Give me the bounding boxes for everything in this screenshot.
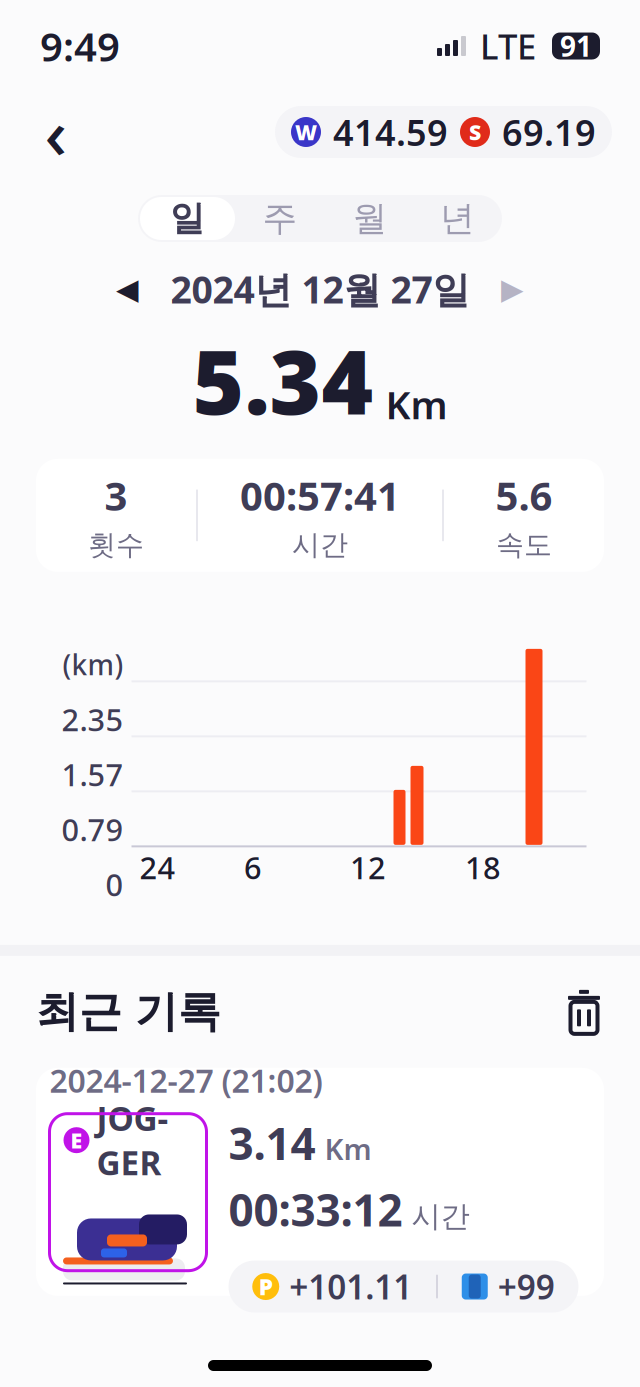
button[interactable]: 년: [415, 197, 500, 240]
staticText: Km: [385, 378, 447, 430]
staticText: 414.59: [333, 108, 448, 156]
staticText: 69.19: [502, 108, 596, 156]
button[interactable]: Back: [28, 104, 84, 160]
staticText: W: [295, 118, 317, 146]
staticText: 3: [104, 469, 127, 522]
staticText: 9:49: [40, 19, 120, 72]
staticText: 3.14: [228, 1114, 315, 1172]
staticText: 00:33:12: [228, 1180, 402, 1238]
staticText: 횟수: [88, 528, 144, 562]
staticText: 12: [350, 847, 386, 888]
button[interactable]: Delete records: [564, 989, 604, 1035]
staticText: 6: [244, 847, 262, 888]
staticText: 1.57: [61, 754, 123, 795]
button[interactable]: 2024-12-27 (21:02): [36, 1068, 604, 1296]
staticText: ◀: [116, 272, 139, 306]
staticText: 5.34: [192, 322, 373, 439]
staticText: (km): [62, 646, 123, 683]
staticText: 시간: [292, 528, 348, 562]
staticText: +101.11: [289, 1264, 412, 1309]
staticText: 2024-12-27 (21:02): [49, 1059, 322, 1102]
button[interactable]: 월: [325, 197, 415, 240]
staticText: Km: [324, 1129, 371, 1168]
staticText: 2024년 12월 27일: [170, 264, 469, 314]
staticText: 18: [465, 847, 501, 888]
button[interactable]: Previous day: [102, 264, 152, 314]
staticText: 24: [139, 847, 175, 888]
staticText: 일: [170, 197, 205, 240]
staticText: 00:57:41: [240, 469, 400, 522]
button[interactable]: Wallet balances: [275, 106, 612, 158]
staticText: 월: [352, 197, 387, 240]
button[interactable]: 주: [235, 197, 325, 240]
staticText: ▶: [501, 272, 524, 306]
staticText: S: [469, 118, 481, 146]
staticText: P: [259, 1271, 273, 1302]
staticText: ‹: [44, 86, 67, 178]
staticText: 0.79: [61, 809, 123, 850]
button[interactable]: Next day: [487, 264, 537, 314]
staticText: 시간: [411, 1198, 469, 1234]
staticText: 년: [440, 197, 475, 240]
staticText: 5.6: [495, 469, 552, 522]
staticText: 주: [262, 197, 297, 240]
staticText: 최근 기록: [36, 986, 221, 1038]
staticText: E: [70, 1126, 82, 1154]
staticText: LTE: [480, 23, 536, 69]
button[interactable]: 일: [140, 197, 235, 240]
staticText: JOGGER: [96, 1096, 168, 1184]
staticText: 2.35: [61, 699, 123, 740]
staticText: 속도: [496, 528, 552, 562]
staticText: 0: [105, 864, 123, 905]
staticText: +99: [498, 1264, 555, 1309]
staticText: 91: [560, 27, 592, 65]
